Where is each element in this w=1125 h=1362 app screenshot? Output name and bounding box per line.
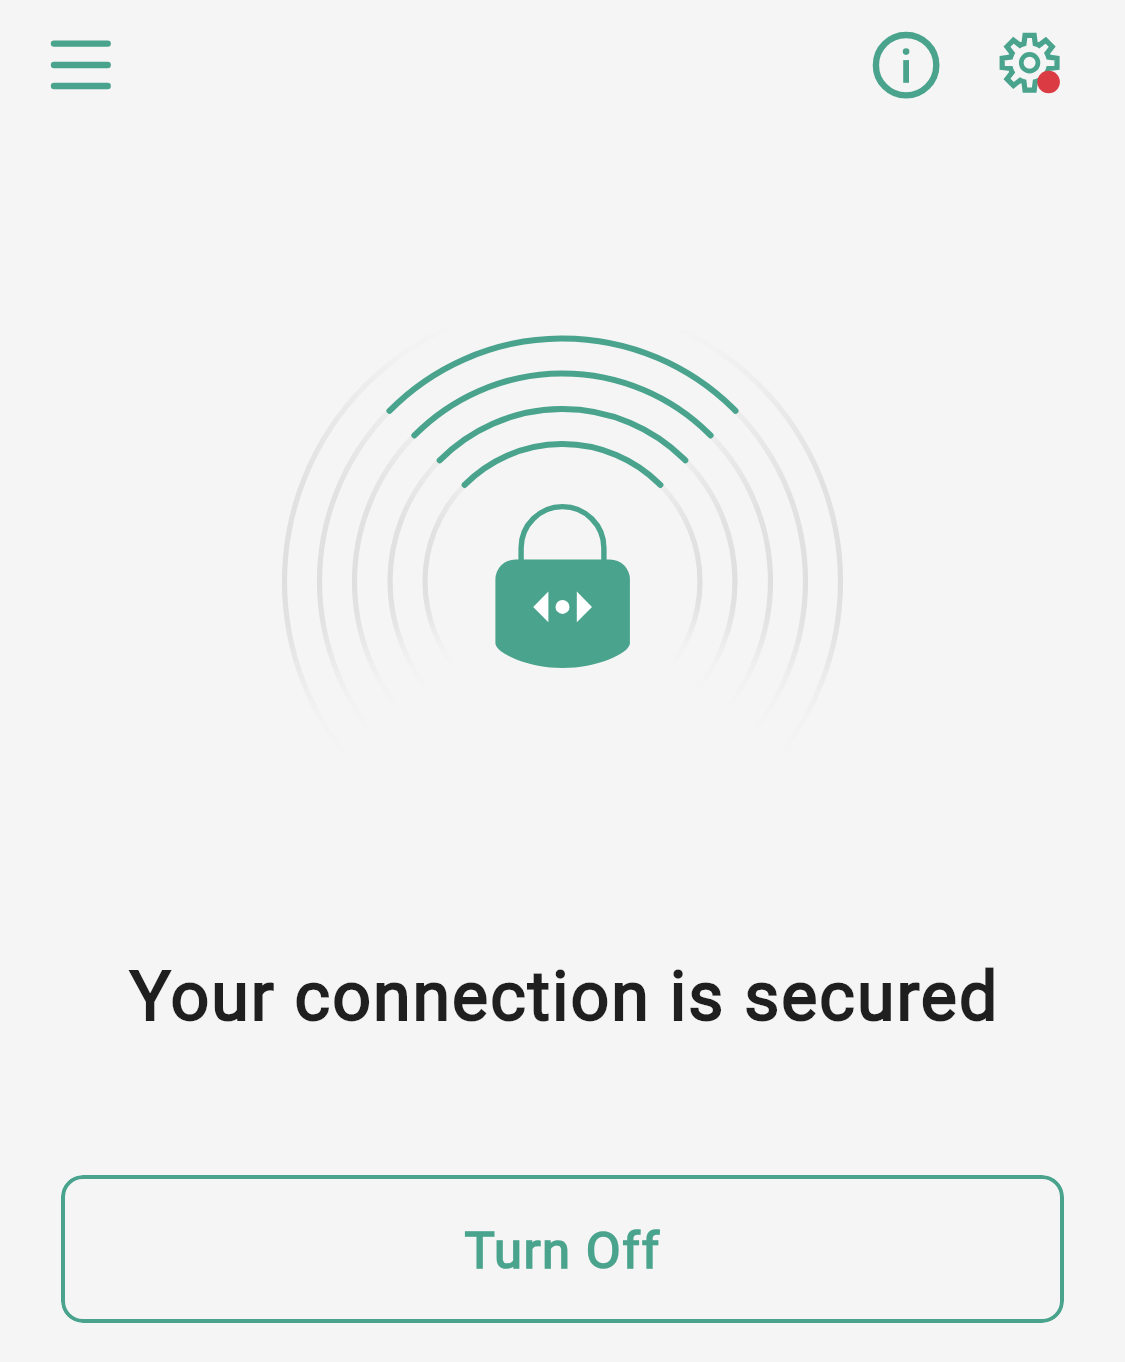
staticText: Turn Off (464, 1221, 661, 1281)
button[interactable]: Open navigation menu (21, 8, 141, 122)
button[interactable]: Settings (970, 3, 1090, 123)
button[interactable]: Information (846, 5, 966, 125)
staticText: Your connection is secured (2, 957, 1125, 1037)
button[interactable]: Turn Off (61, 1175, 1064, 1323)
